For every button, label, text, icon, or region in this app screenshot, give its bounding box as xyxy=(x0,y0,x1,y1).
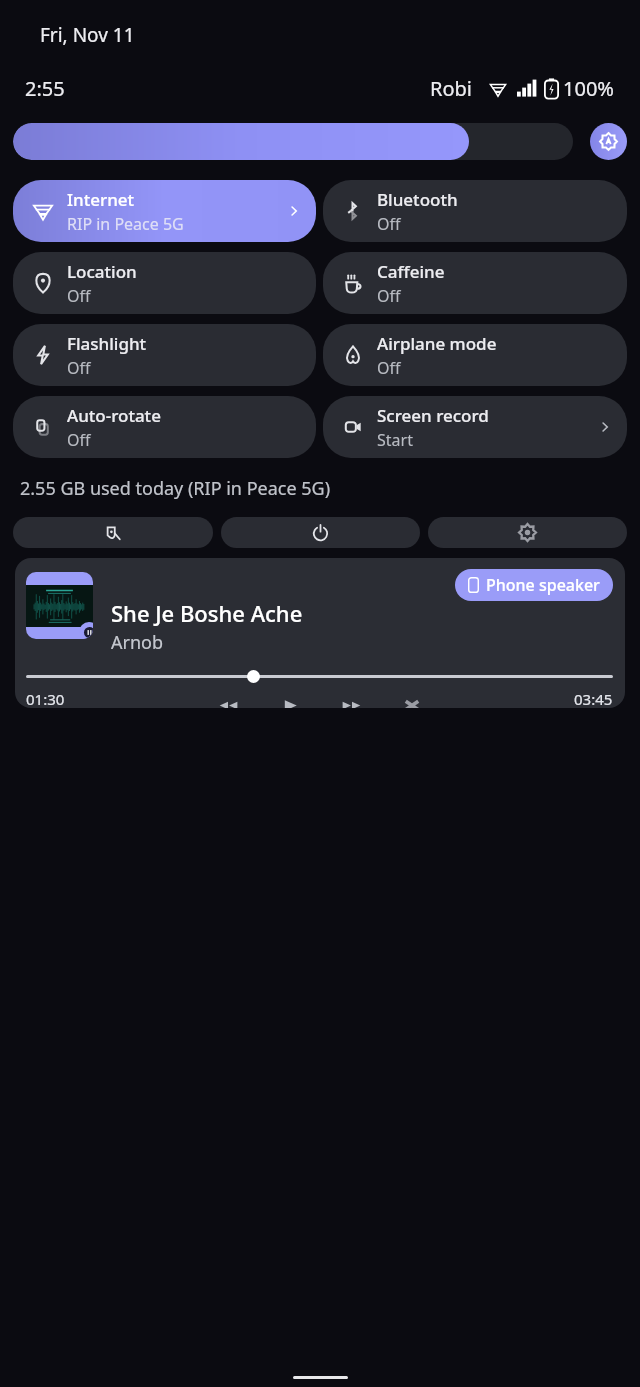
button[interactable]: Close xyxy=(397,696,427,708)
staticText: Location xyxy=(67,260,137,283)
staticText: Start xyxy=(377,429,413,451)
staticText: Caffeine xyxy=(377,260,445,283)
staticText: 03:45 xyxy=(574,689,613,708)
staticText: Off xyxy=(67,285,91,307)
button[interactable]: Rewind xyxy=(213,696,243,708)
staticText: Auto-rotate xyxy=(67,404,161,427)
button[interactable]: Airplane mode xyxy=(323,324,627,386)
button[interactable] xyxy=(13,123,573,160)
button[interactable]: Flashlight xyxy=(13,324,316,386)
staticText: Fri, Nov 11 xyxy=(40,22,135,48)
button[interactable]: Internet xyxy=(13,180,316,242)
staticText: Airplane mode xyxy=(377,332,497,355)
staticText: Internet xyxy=(67,188,135,211)
staticText: Robi xyxy=(430,75,472,102)
staticText: 01:30 xyxy=(26,689,65,708)
button[interactable]: Screen record xyxy=(323,396,627,458)
staticText: Off xyxy=(377,285,401,307)
staticText: Flashlight xyxy=(67,332,147,355)
button[interactable]: Caffeine xyxy=(323,252,627,314)
button[interactable]: Play xyxy=(275,696,305,708)
staticText: She Je Boshe Ache xyxy=(111,598,303,628)
button[interactable]: Pause xyxy=(79,622,93,639)
button[interactable]: Pause xyxy=(15,558,625,708)
button[interactable]: Settings xyxy=(428,517,627,548)
button[interactable]: Bluetooth xyxy=(323,180,627,242)
button[interactable]: Fast forward xyxy=(337,696,367,708)
staticText: Off xyxy=(67,429,91,451)
staticText: Arnob xyxy=(111,630,164,655)
button[interactable]: Location xyxy=(13,252,316,314)
staticText: Off xyxy=(377,213,401,235)
button[interactable]: Auto brightness xyxy=(590,123,627,160)
button[interactable] xyxy=(26,669,613,683)
staticText: Phone speaker xyxy=(486,574,600,596)
staticText: Bluetooth xyxy=(377,188,458,211)
staticText: Off xyxy=(377,357,401,379)
button[interactable]: Power xyxy=(221,517,420,548)
button[interactable]: Edit tiles xyxy=(13,517,213,548)
staticText: 100% xyxy=(563,75,614,102)
button[interactable]: Auto-rotate xyxy=(13,396,316,458)
staticText: 2:55 xyxy=(25,75,65,102)
staticText: RIP in Peace 5G xyxy=(67,213,184,235)
staticText: Screen record xyxy=(377,404,489,427)
button[interactable]: Phone speaker xyxy=(455,569,613,601)
staticText: 2.55 GB used today (RIP in Peace 5G) xyxy=(20,476,331,501)
staticText: Off xyxy=(67,357,91,379)
